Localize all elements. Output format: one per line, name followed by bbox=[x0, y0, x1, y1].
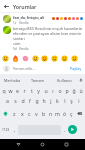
button[interactable]: Emoji reaction bbox=[70, 54, 78, 62]
button[interactable]: Comma bbox=[11, 120, 18, 139]
button[interactable]: o bbox=[56, 86, 63, 95]
button[interactable]: Kullanıcı bbox=[51, 74, 77, 86]
staticText: l bbox=[64, 97, 66, 104]
staticText: Kullanıcı bbox=[57, 78, 72, 83]
staticText: Merhaba bbox=[4, 78, 21, 83]
button[interactable]: w bbox=[7, 86, 14, 95]
staticText: k bbox=[56, 97, 59, 104]
button[interactable]: Emoji reaction bbox=[40, 54, 48, 62]
staticText: j bbox=[50, 97, 52, 104]
staticText: ı bbox=[52, 87, 54, 94]
button[interactable]: Merhaba bbox=[0, 74, 25, 86]
staticText: x bbox=[21, 110, 24, 117]
staticText: p bbox=[65, 87, 69, 94]
staticText: r bbox=[23, 87, 26, 94]
button[interactable]: z bbox=[10, 106, 18, 120]
staticText: g bbox=[35, 97, 39, 104]
staticText: v bbox=[35, 110, 38, 117]
staticText: ç bbox=[70, 110, 73, 117]
button[interactable]: ğ bbox=[70, 86, 77, 95]
button[interactable]: ö bbox=[61, 106, 68, 120]
staticText: ş bbox=[70, 97, 73, 104]
staticText: ö bbox=[63, 110, 67, 117]
staticText: b bbox=[42, 110, 46, 117]
staticText: w bbox=[8, 87, 13, 94]
staticText: ?123 bbox=[2, 127, 10, 132]
button[interactable]: q bbox=[1, 86, 7, 95]
button[interactable]: s bbox=[11, 95, 19, 106]
staticText: . bbox=[64, 126, 66, 133]
staticText: Yorum ekle... bbox=[13, 66, 36, 71]
button[interactable]: Emoji reaction bbox=[50, 54, 58, 62]
button[interactable]: v bbox=[33, 106, 40, 120]
staticText: a bbox=[6, 97, 9, 104]
button[interactable]: d bbox=[19, 95, 26, 106]
staticText: q bbox=[2, 87, 6, 94]
staticText: z bbox=[13, 110, 16, 117]
button[interactable]: Voice input bbox=[77, 74, 85, 86]
staticText: m bbox=[55, 110, 60, 117]
button[interactable]: f bbox=[26, 95, 33, 106]
button[interactable]: j bbox=[47, 95, 54, 106]
button[interactable]: Shift bbox=[1, 106, 10, 120]
button[interactable]: b bbox=[40, 106, 47, 120]
button[interactable]: Period bbox=[61, 120, 68, 139]
staticText: n bbox=[49, 110, 53, 117]
button[interactable]: ü bbox=[77, 86, 84, 95]
button[interactable]: Emoji reaction bbox=[1, 54, 9, 62]
staticText: e bbox=[16, 87, 19, 94]
staticText: 1s bbox=[13, 21, 17, 25]
button[interactable]: u bbox=[42, 86, 49, 95]
button[interactable]: ç bbox=[68, 106, 75, 120]
staticText: ğ bbox=[72, 87, 76, 94]
staticText: Yanıtla bbox=[19, 47, 29, 51]
button[interactable]: i bbox=[75, 95, 82, 106]
staticText: , bbox=[14, 126, 16, 133]
staticText: ü bbox=[79, 87, 83, 94]
button[interactable]: Emoji reaction bbox=[21, 54, 29, 62]
staticText: s bbox=[14, 97, 17, 104]
button[interactable]: m bbox=[54, 106, 61, 120]
button[interactable]: Emoji reaction bbox=[11, 54, 19, 62]
button[interactable]: p bbox=[63, 86, 70, 95]
button[interactable]: g bbox=[33, 95, 40, 106]
staticText: Tamam bbox=[31, 78, 45, 83]
staticText: i bbox=[78, 97, 80, 104]
button[interactable]: l bbox=[61, 95, 68, 106]
staticText: t bbox=[31, 87, 33, 94]
button[interactable]: x bbox=[18, 106, 26, 120]
button[interactable]: Back bbox=[0, 0, 13, 12]
button[interactable]: y bbox=[35, 86, 42, 95]
staticText: Paylaş bbox=[70, 66, 81, 71]
button[interactable]: e bbox=[14, 86, 21, 95]
button[interactable]: t bbox=[28, 86, 35, 95]
button[interactable]: Back bbox=[13, 139, 24, 150]
button[interactable]: k bbox=[54, 95, 61, 106]
staticText: beratgul555 Rosulinizi ençuh kazanlarizi… bbox=[13, 26, 83, 46]
button[interactable]: Tamam bbox=[25, 74, 51, 86]
button[interactable]: Home bbox=[37, 139, 48, 150]
staticText: y bbox=[37, 87, 40, 94]
staticText: d bbox=[21, 97, 25, 104]
button[interactable]: ş bbox=[68, 95, 75, 106]
staticText: h bbox=[42, 97, 46, 104]
button[interactable]: a bbox=[3, 95, 11, 106]
staticText: fan_du_fntqtu_alive bbox=[13, 15, 45, 20]
button[interactable]: ı bbox=[49, 86, 56, 95]
staticText: Yanıtla bbox=[19, 21, 29, 25]
button[interactable]: Send bbox=[68, 125, 77, 134]
button[interactable]: c bbox=[26, 106, 33, 120]
button[interactable]: r bbox=[21, 86, 28, 95]
button[interactable]: Emoji reaction bbox=[31, 54, 39, 62]
button[interactable]: h bbox=[40, 95, 47, 106]
button[interactable]: ?123 bbox=[1, 120, 11, 139]
button[interactable]: Paylaş bbox=[69, 64, 82, 73]
button[interactable]: Backspace bbox=[75, 106, 84, 120]
button[interactable]: n bbox=[47, 106, 54, 120]
button[interactable]: Emoji reaction bbox=[60, 54, 68, 62]
button[interactable]: Recents bbox=[61, 139, 72, 150]
staticText: o bbox=[58, 87, 62, 94]
staticText: f bbox=[29, 97, 31, 104]
staticText: Yorumlar bbox=[13, 3, 37, 10]
